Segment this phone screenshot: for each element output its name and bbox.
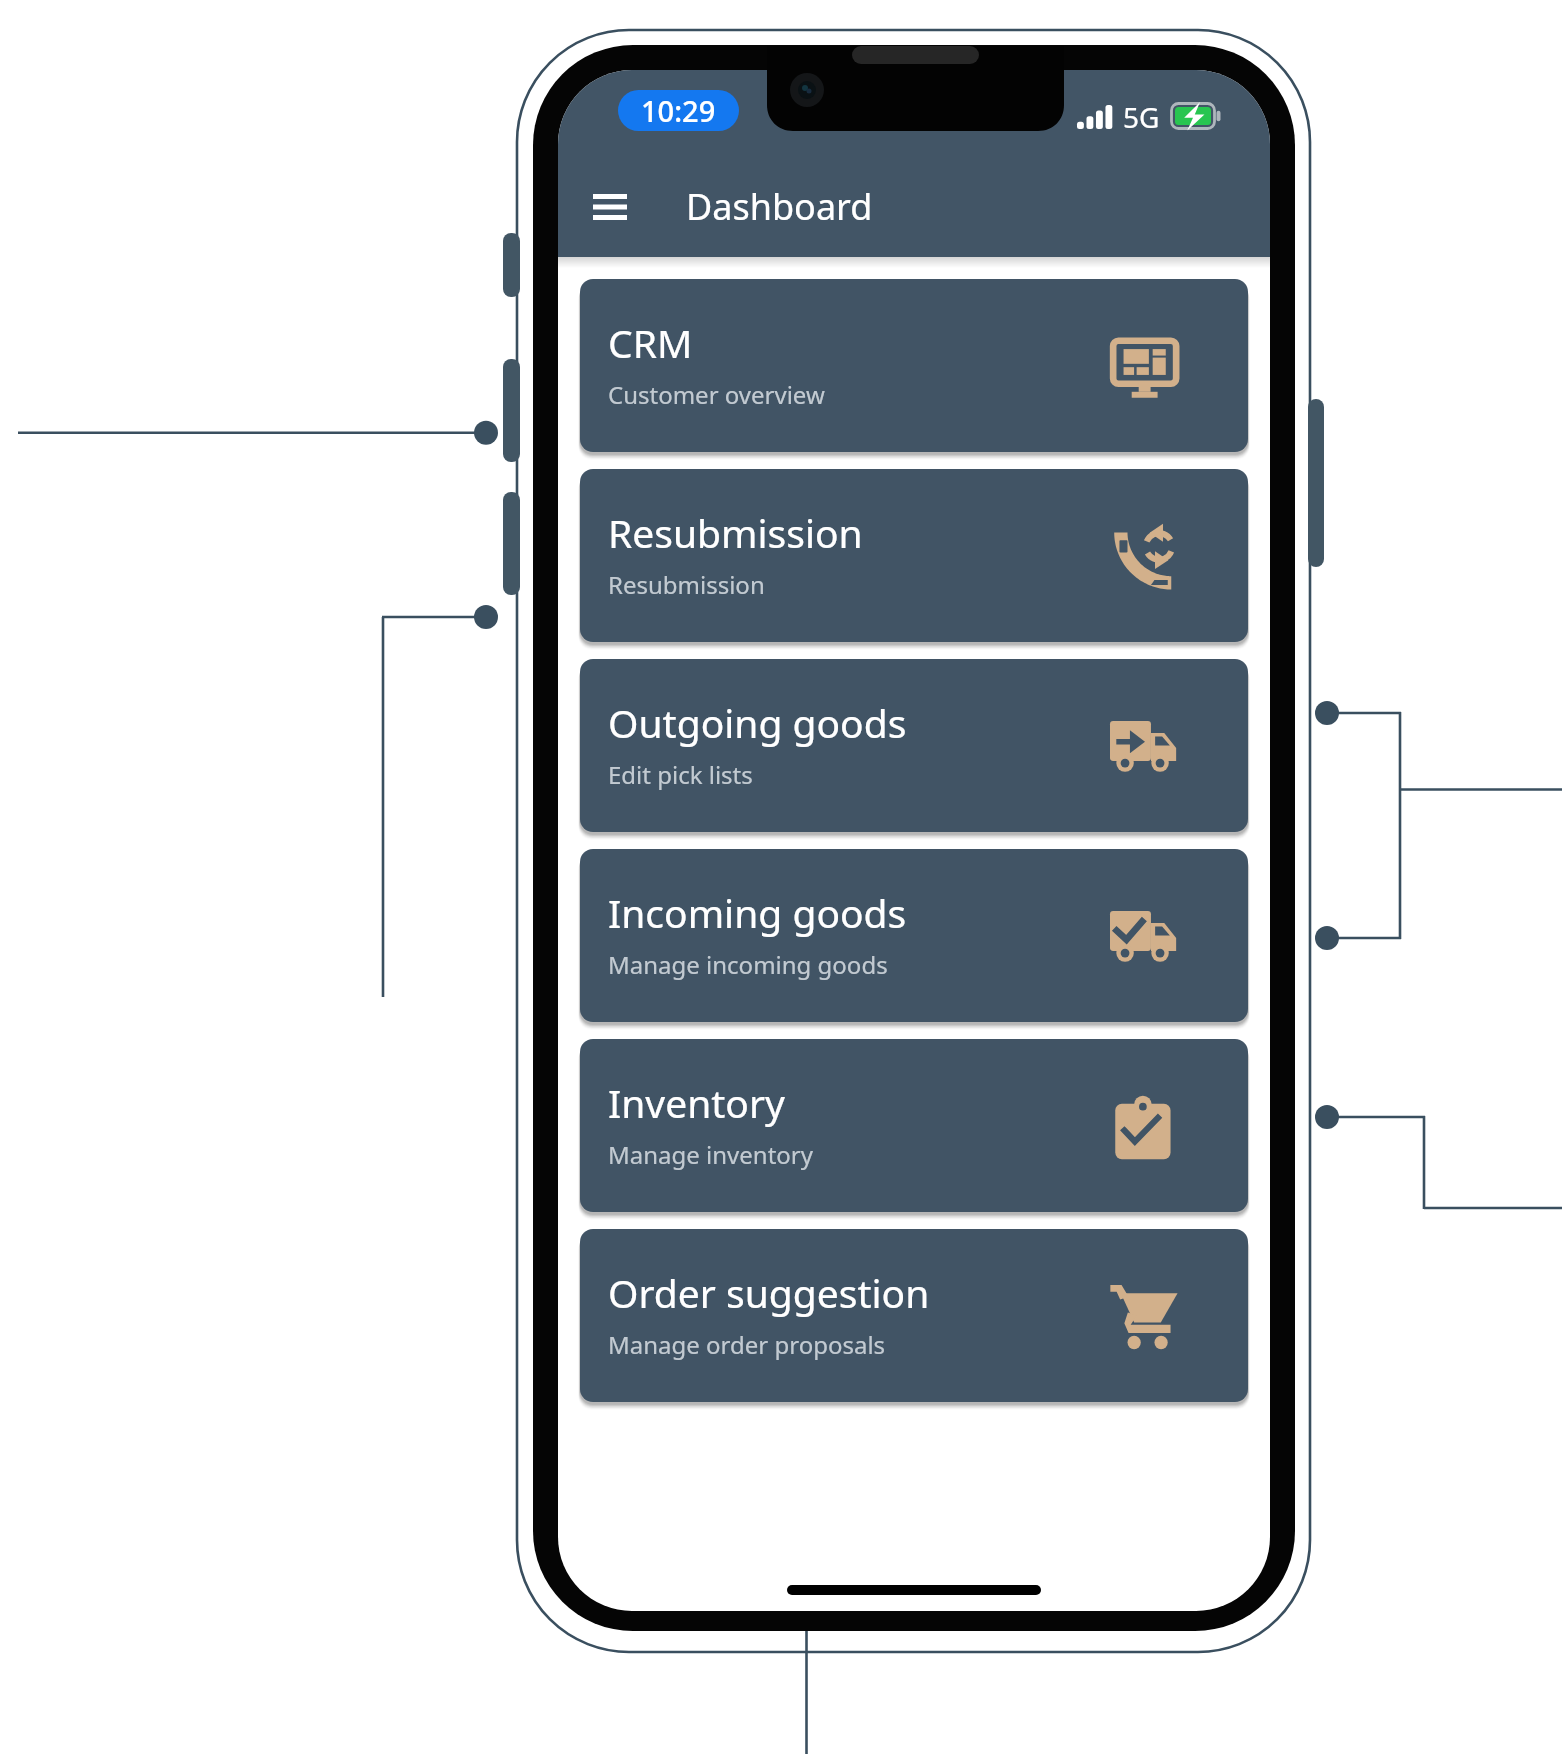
staticText: Manage order proposals — [608, 1328, 886, 1361]
staticText: Customer overview — [608, 378, 825, 411]
button[interactable]: Resubmission — [580, 469, 1248, 642]
staticText: CRM — [608, 316, 693, 369]
staticText: Inventory — [608, 1076, 785, 1129]
staticText: 5G — [1123, 98, 1160, 136]
staticText: Manage inventory — [608, 1138, 813, 1171]
staticText: Resubmission — [608, 568, 765, 601]
staticText: Resubmission — [608, 506, 863, 559]
button[interactable]: Open navigation menu — [579, 176, 641, 238]
staticText: Dashboard — [686, 182, 873, 231]
staticText: Outgoing goods — [608, 696, 907, 749]
staticText: Edit pick lists — [608, 758, 753, 791]
button[interactable]: CRM — [580, 279, 1248, 452]
button[interactable]: Incoming goods — [580, 849, 1248, 1022]
button[interactable]: Outgoing goods — [580, 659, 1248, 832]
staticText: Manage incoming goods — [608, 948, 888, 981]
staticText: 10:29 — [641, 91, 716, 130]
staticText: Order suggestion — [608, 1266, 930, 1319]
staticText: Incoming goods — [608, 886, 907, 939]
button[interactable]: Order suggestion — [580, 1229, 1248, 1402]
button[interactable]: Inventory — [580, 1039, 1248, 1212]
